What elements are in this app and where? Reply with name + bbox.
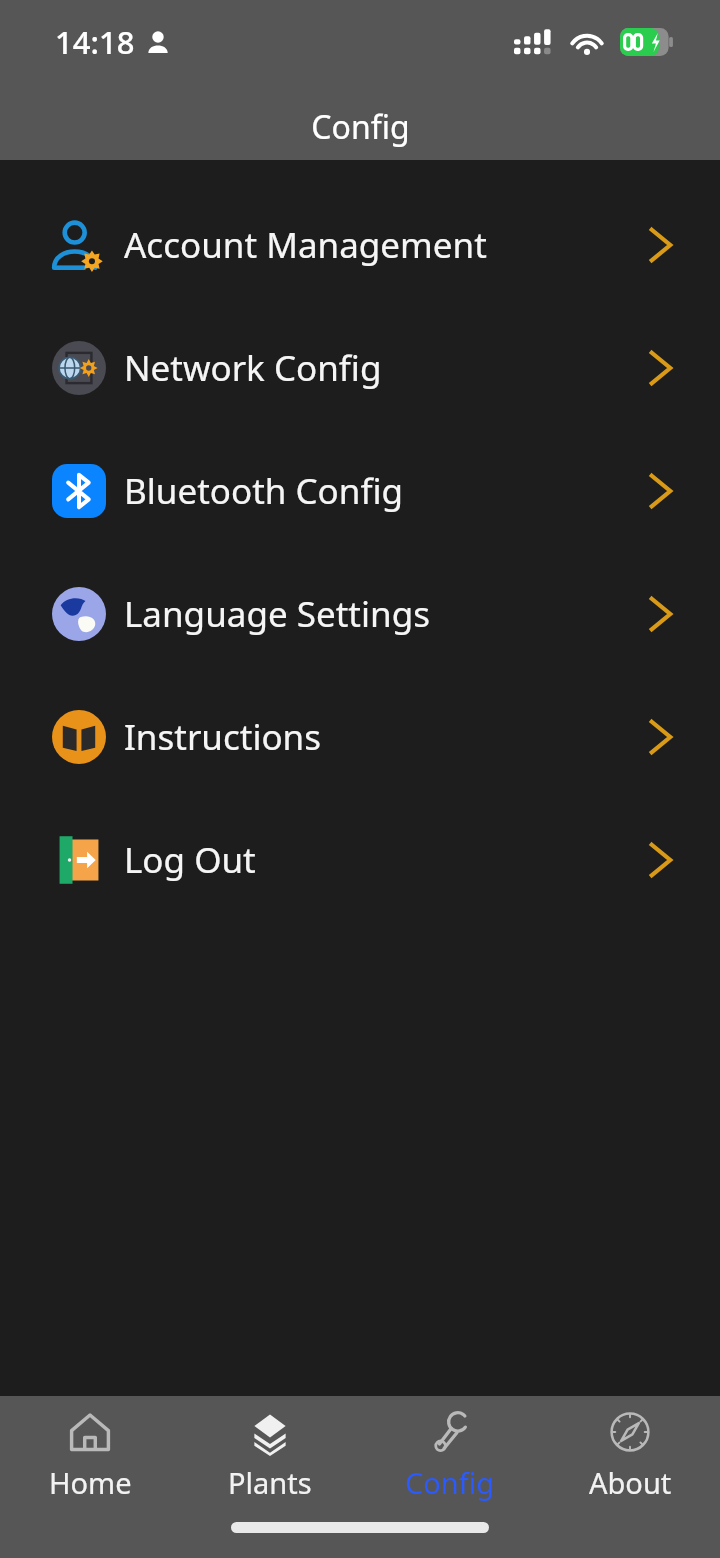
staticText: Plants bbox=[228, 1463, 312, 1502]
staticText: Language Settings bbox=[124, 590, 650, 638]
staticText: Bluetooth Config bbox=[124, 467, 650, 515]
staticText: Network Config bbox=[124, 344, 650, 392]
button[interactable]: Log Out bbox=[0, 798, 720, 921]
staticText: Account Management bbox=[124, 221, 650, 269]
staticText: About bbox=[589, 1463, 672, 1502]
staticText: Config bbox=[405, 1463, 495, 1502]
staticText: Config bbox=[311, 105, 410, 149]
button[interactable]: Account Management bbox=[0, 183, 720, 306]
button[interactable]: Network Config bbox=[0, 306, 720, 429]
staticText: Log Out bbox=[124, 836, 650, 884]
button[interactable]: Plants bbox=[180, 1396, 360, 1514]
staticText: 14:18 bbox=[55, 21, 135, 63]
button[interactable]: Bluetooth Config bbox=[0, 429, 720, 552]
button[interactable]: Config bbox=[360, 1396, 540, 1514]
button[interactable]: Home bbox=[0, 1396, 180, 1514]
button[interactable]: Instructions bbox=[0, 675, 720, 798]
button[interactable]: About bbox=[540, 1396, 720, 1514]
staticText: Home bbox=[49, 1463, 132, 1502]
button[interactable]: Language Settings bbox=[0, 552, 720, 675]
staticText: Instructions bbox=[124, 713, 650, 761]
